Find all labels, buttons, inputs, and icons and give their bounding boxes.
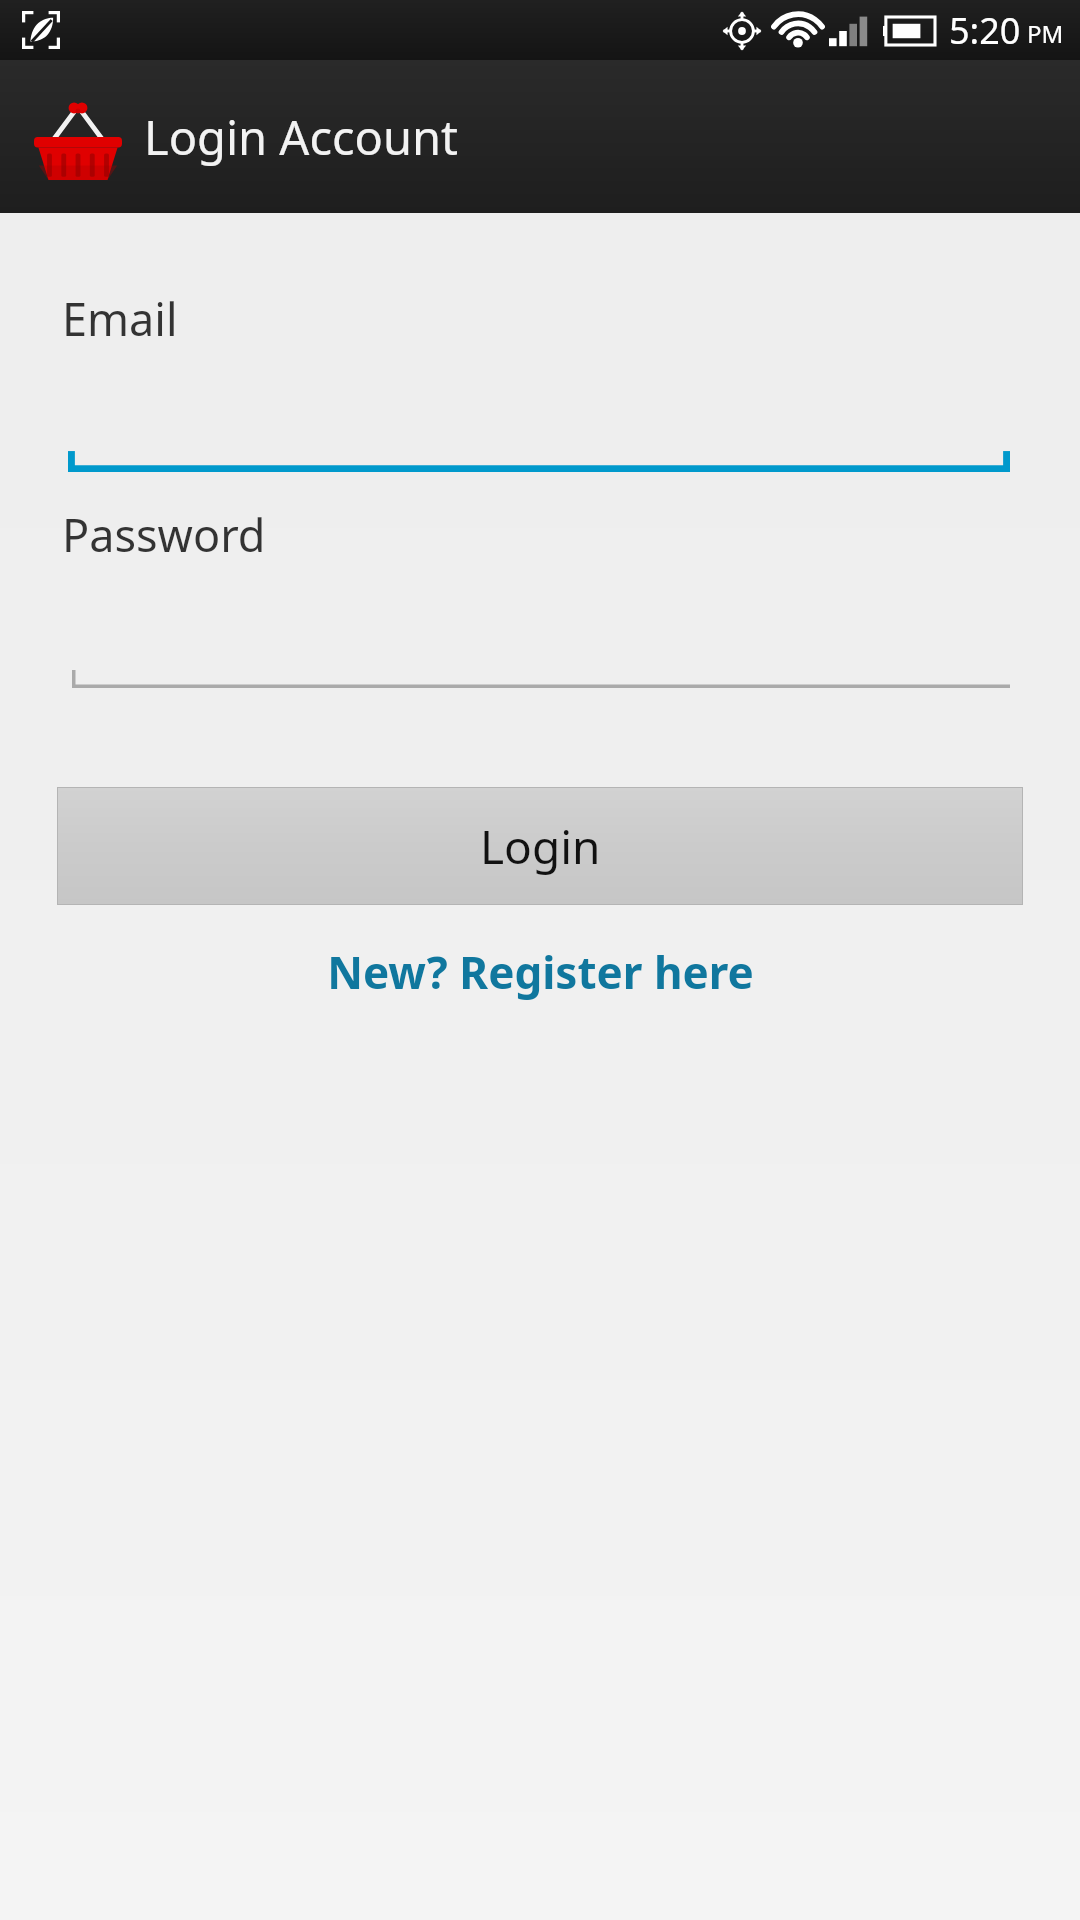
staticText: PM — [1027, 17, 1064, 50]
staticText: Login — [480, 815, 601, 878]
staticText: Password — [62, 504, 266, 565]
button[interactable] — [0, 565, 1080, 690]
button[interactable] — [0, 349, 1080, 474]
button[interactable]: Login — [57, 787, 1023, 905]
staticText: Email — [62, 288, 178, 349]
staticText: Login Account — [144, 105, 459, 169]
staticText: 5:20 — [949, 6, 1021, 55]
staticText: New? Register here — [327, 942, 754, 1002]
button[interactable]: New? Register here — [0, 927, 1080, 1017]
